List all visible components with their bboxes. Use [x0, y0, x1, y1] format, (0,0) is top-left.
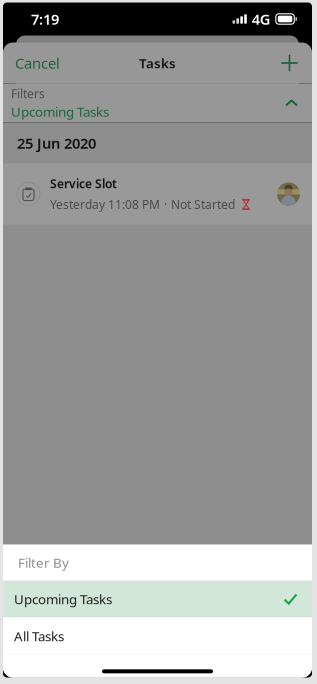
staticText: Upcoming Tasks — [11, 103, 109, 120]
button[interactable]: All Tasks — [3, 617, 312, 654]
staticText: 4G — [252, 9, 271, 29]
button[interactable]: Cancel — [3, 42, 72, 83]
staticText: Filter By — [18, 554, 69, 571]
button[interactable]: Add task — [267, 42, 312, 83]
staticText: Tasks — [139, 54, 176, 72]
staticText: Upcoming Tasks — [14, 590, 112, 608]
button[interactable]: Service Slot — [3, 163, 312, 224]
staticText: Cancel — [15, 53, 60, 73]
staticText: 25 Jun 2020 — [17, 133, 96, 153]
staticText: Service Slot — [50, 176, 117, 191]
staticText: Yesterday 11:08 PM — [50, 196, 160, 212]
staticText: All Tasks — [14, 627, 64, 645]
staticText: Not Started — [171, 196, 235, 212]
staticText: 7:19 — [31, 9, 59, 29]
button[interactable]: Upcoming Tasks — [3, 580, 312, 617]
staticText: Filters — [11, 86, 45, 102]
staticText: · — [164, 196, 167, 212]
button[interactable]: Filters — [3, 83, 312, 122]
